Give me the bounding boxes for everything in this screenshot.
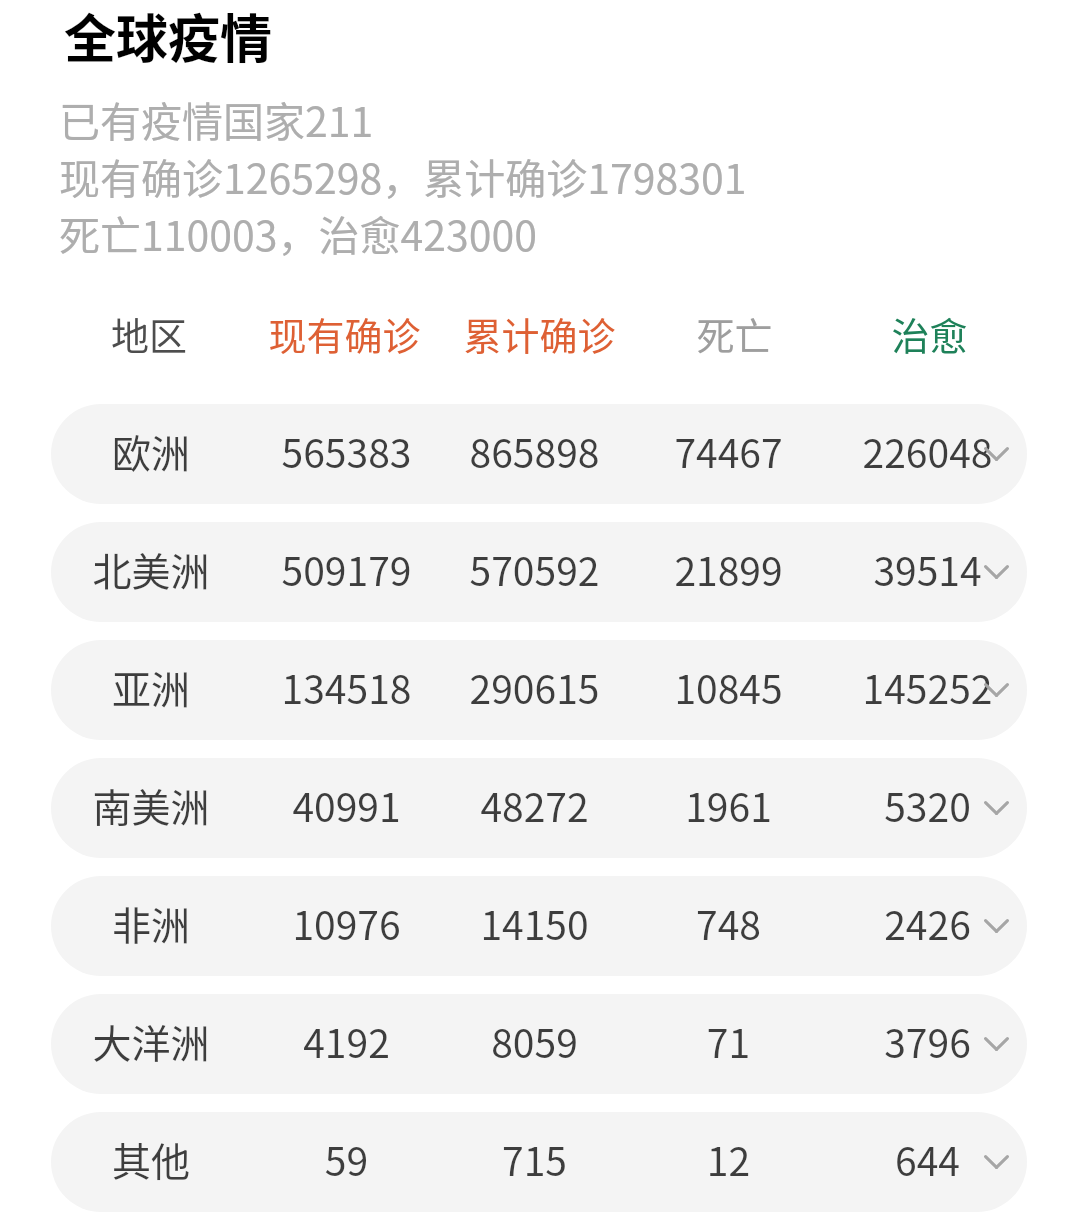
button[interactable]: 展开 南美洲 — [984, 801, 1009, 815]
staticText: 现有确诊 — [247, 306, 442, 356]
staticText: 地区 — [51, 306, 247, 356]
button[interactable]: 欧洲 — [51, 404, 1027, 504]
button[interactable]: 地区 — [51, 306, 247, 356]
staticText: 治愈 — [832, 306, 1027, 356]
button[interactable]: 亚洲 — [51, 640, 1027, 740]
staticText: 欧洲 — [53, 423, 249, 479]
staticText: 非洲 — [53, 895, 249, 951]
button[interactable]: 其他 — [51, 1112, 1027, 1212]
button[interactable]: 南美洲 — [51, 758, 1027, 858]
staticText: 74467 — [631, 423, 826, 479]
staticText: 大洋洲 — [53, 1013, 249, 1069]
staticText: 21899 — [631, 541, 826, 597]
staticText: 14150 — [437, 895, 632, 951]
staticText: 现有确诊1265298，累计确诊1798301 — [59, 146, 747, 203]
button[interactable]: 展开 欧洲 — [984, 447, 1009, 461]
staticText: 509179 — [249, 541, 444, 597]
staticText: 10845 — [631, 659, 826, 715]
staticText: 570592 — [437, 541, 632, 597]
staticText: 226048 — [830, 423, 1025, 479]
staticText: 亚洲 — [53, 659, 249, 715]
staticText: 145252 — [830, 659, 1025, 715]
button[interactable]: 展开 北美洲 — [984, 565, 1009, 579]
staticText: 5320 — [830, 777, 1025, 833]
button[interactable]: 非洲 — [51, 876, 1027, 976]
staticText: 累计确诊 — [442, 306, 637, 356]
staticText: 715 — [437, 1131, 632, 1187]
staticText: 134518 — [249, 659, 444, 715]
staticText: 644 — [830, 1131, 1025, 1187]
staticText: 748 — [631, 895, 826, 951]
staticText: 3796 — [830, 1013, 1025, 1069]
staticText: 40991 — [249, 777, 444, 833]
button[interactable]: 治愈 — [832, 306, 1027, 356]
staticText: 北美洲 — [53, 541, 249, 597]
staticText: 71 — [631, 1013, 826, 1069]
button[interactable]: 北美洲 — [51, 522, 1027, 622]
staticText: 12 — [631, 1131, 826, 1187]
staticText: 1961 — [631, 777, 826, 833]
staticText: 全球疫情 — [64, 0, 273, 70]
staticText: 2426 — [830, 895, 1025, 951]
staticText: 290615 — [437, 659, 632, 715]
button[interactable]: 现有确诊 — [247, 306, 442, 356]
button[interactable]: 展开 其他 — [984, 1155, 1009, 1169]
staticText: 39514 — [830, 541, 1025, 597]
staticText: 865898 — [437, 423, 632, 479]
staticText: 已有疫情国家211 — [59, 89, 374, 146]
button[interactable]: 展开 亚洲 — [984, 683, 1009, 697]
staticText: 死亡110003，治愈423000 — [59, 203, 538, 260]
staticText: 其他 — [53, 1131, 249, 1187]
staticText: 8059 — [437, 1013, 632, 1069]
button[interactable]: 展开 大洋洲 — [984, 1037, 1009, 1051]
button[interactable]: 死亡 — [637, 306, 832, 356]
staticText: 10976 — [249, 895, 444, 951]
button[interactable]: 累计确诊 — [442, 306, 637, 356]
staticText: 死亡 — [637, 306, 832, 356]
button[interactable]: 大洋洲 — [51, 994, 1027, 1094]
staticText: 48272 — [437, 777, 632, 833]
button[interactable]: 展开 非洲 — [984, 919, 1009, 933]
staticText: 59 — [249, 1131, 444, 1187]
staticText: 565383 — [249, 423, 444, 479]
staticText: 4192 — [249, 1013, 444, 1069]
staticText: 南美洲 — [53, 777, 249, 833]
